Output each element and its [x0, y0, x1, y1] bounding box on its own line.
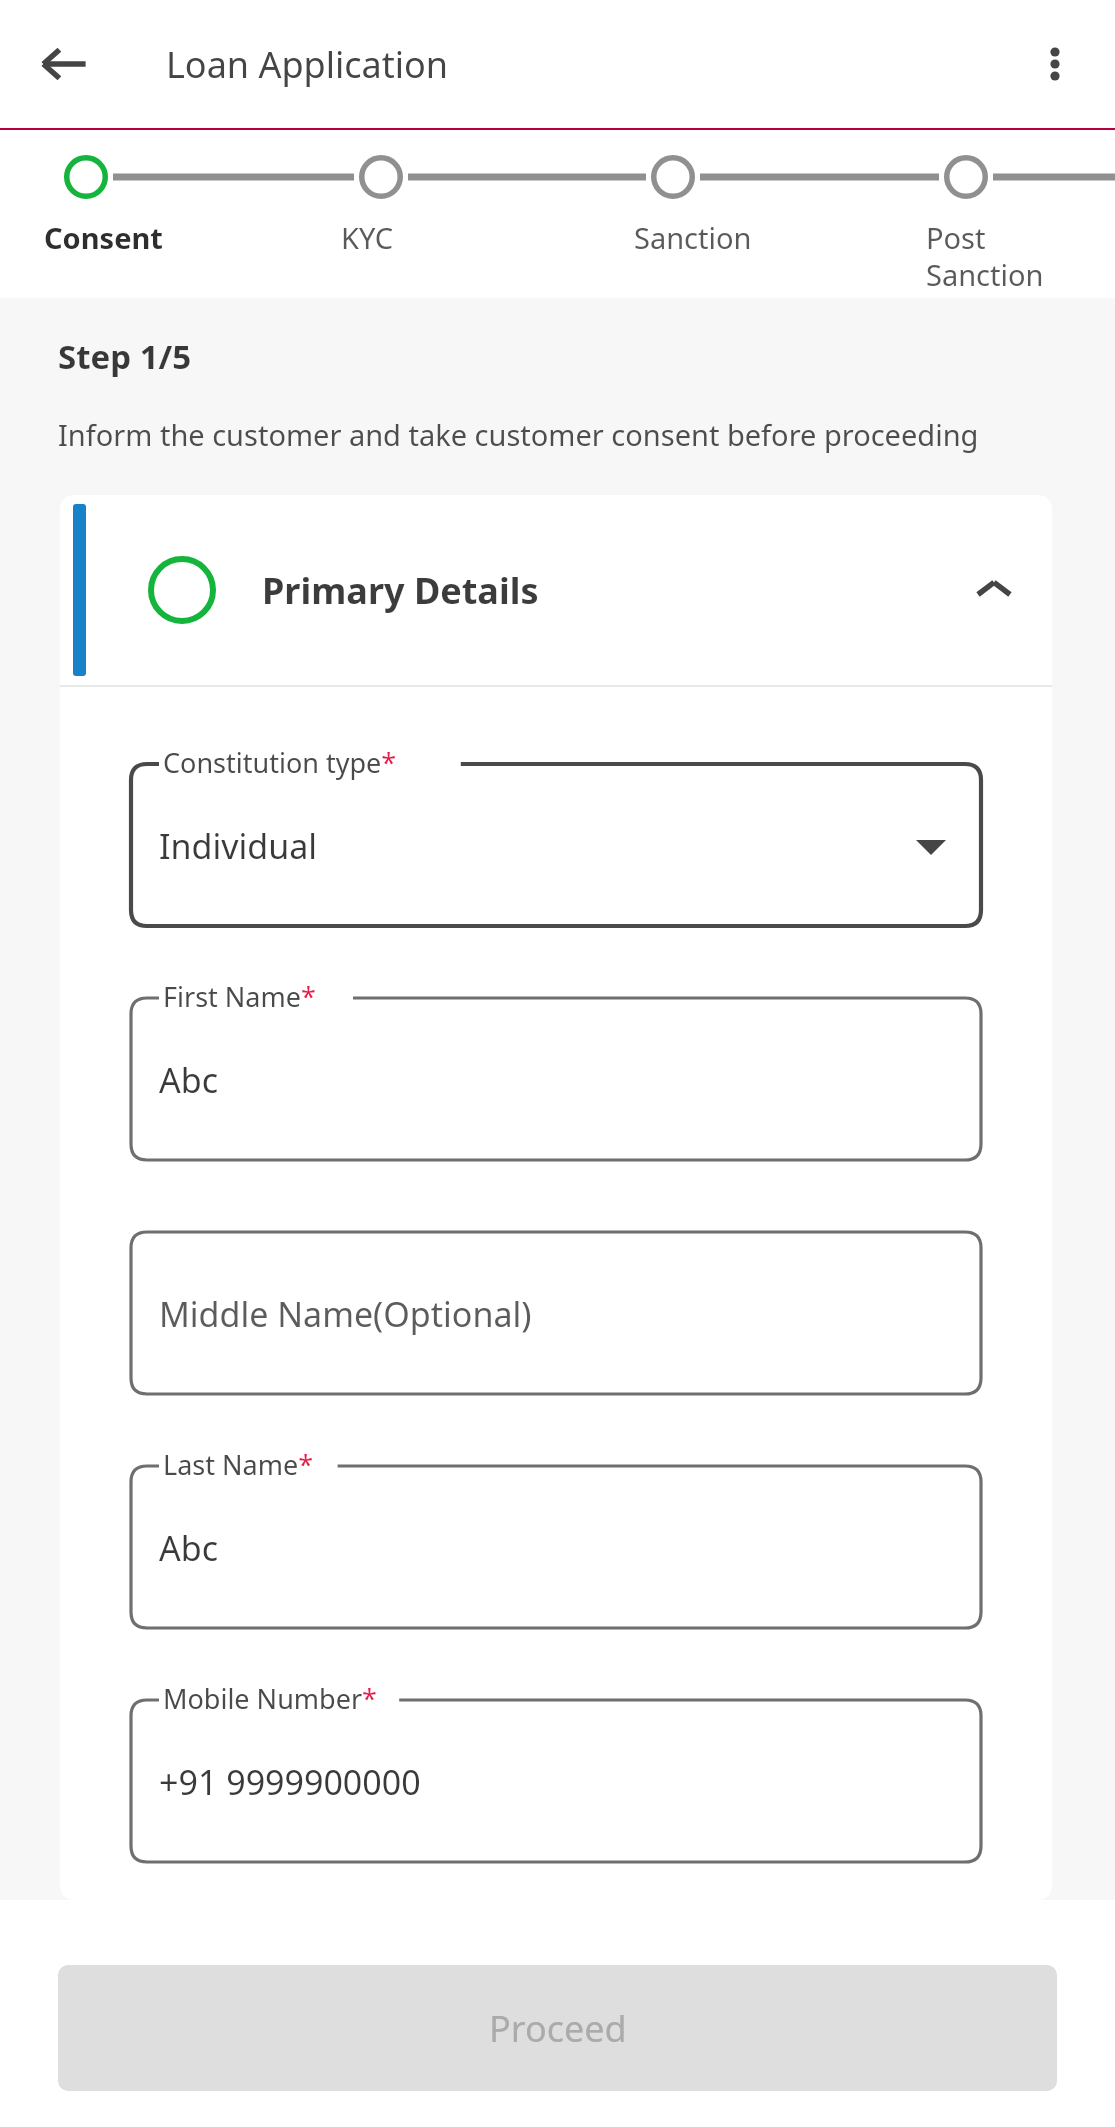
button[interactable]: Back: [22, 22, 106, 106]
button[interactable]: Sanction: [634, 218, 752, 257]
button[interactable]: First Name*: [131, 980, 981, 1160]
staticText: Loan Application: [166, 40, 449, 89]
button[interactable]: KYC: [341, 218, 394, 257]
button[interactable]: Collapse section: [958, 554, 1030, 626]
button[interactable]: Post Sanction: [926, 218, 1044, 295]
staticText: Middle Name(Optional): [159, 1291, 532, 1337]
staticText: Abc: [159, 1057, 218, 1103]
button[interactable]: Last Name*: [131, 1448, 981, 1628]
staticText: Inform the customer and take customer co…: [58, 415, 979, 454]
button[interactable]: Primary Details: [60, 495, 1052, 685]
button[interactable]: Proceed: [58, 1965, 1057, 2091]
staticText: Mobile Number*: [163, 1680, 377, 1717]
button[interactable]: Constitution type*: [131, 746, 981, 926]
button[interactable]: Middle Name(Optional): [131, 1214, 981, 1394]
staticText: +91 9999900000: [159, 1759, 421, 1805]
staticText: Constitution type*: [163, 744, 397, 781]
button[interactable]: Consent: [44, 218, 163, 257]
staticText: Individual: [159, 823, 318, 869]
staticText: Last Name*: [163, 1446, 314, 1483]
button[interactable]: Open dropdown: [899, 814, 963, 878]
button[interactable]: Mobile Number*: [131, 1682, 981, 1862]
staticText: Abc: [159, 1525, 218, 1571]
staticText: First Name*: [163, 978, 316, 1015]
staticText: Step 1/5: [58, 334, 192, 379]
staticText: Proceed: [489, 2004, 627, 2053]
staticText: Primary Details: [262, 566, 539, 615]
button[interactable]: More options: [1013, 22, 1097, 106]
